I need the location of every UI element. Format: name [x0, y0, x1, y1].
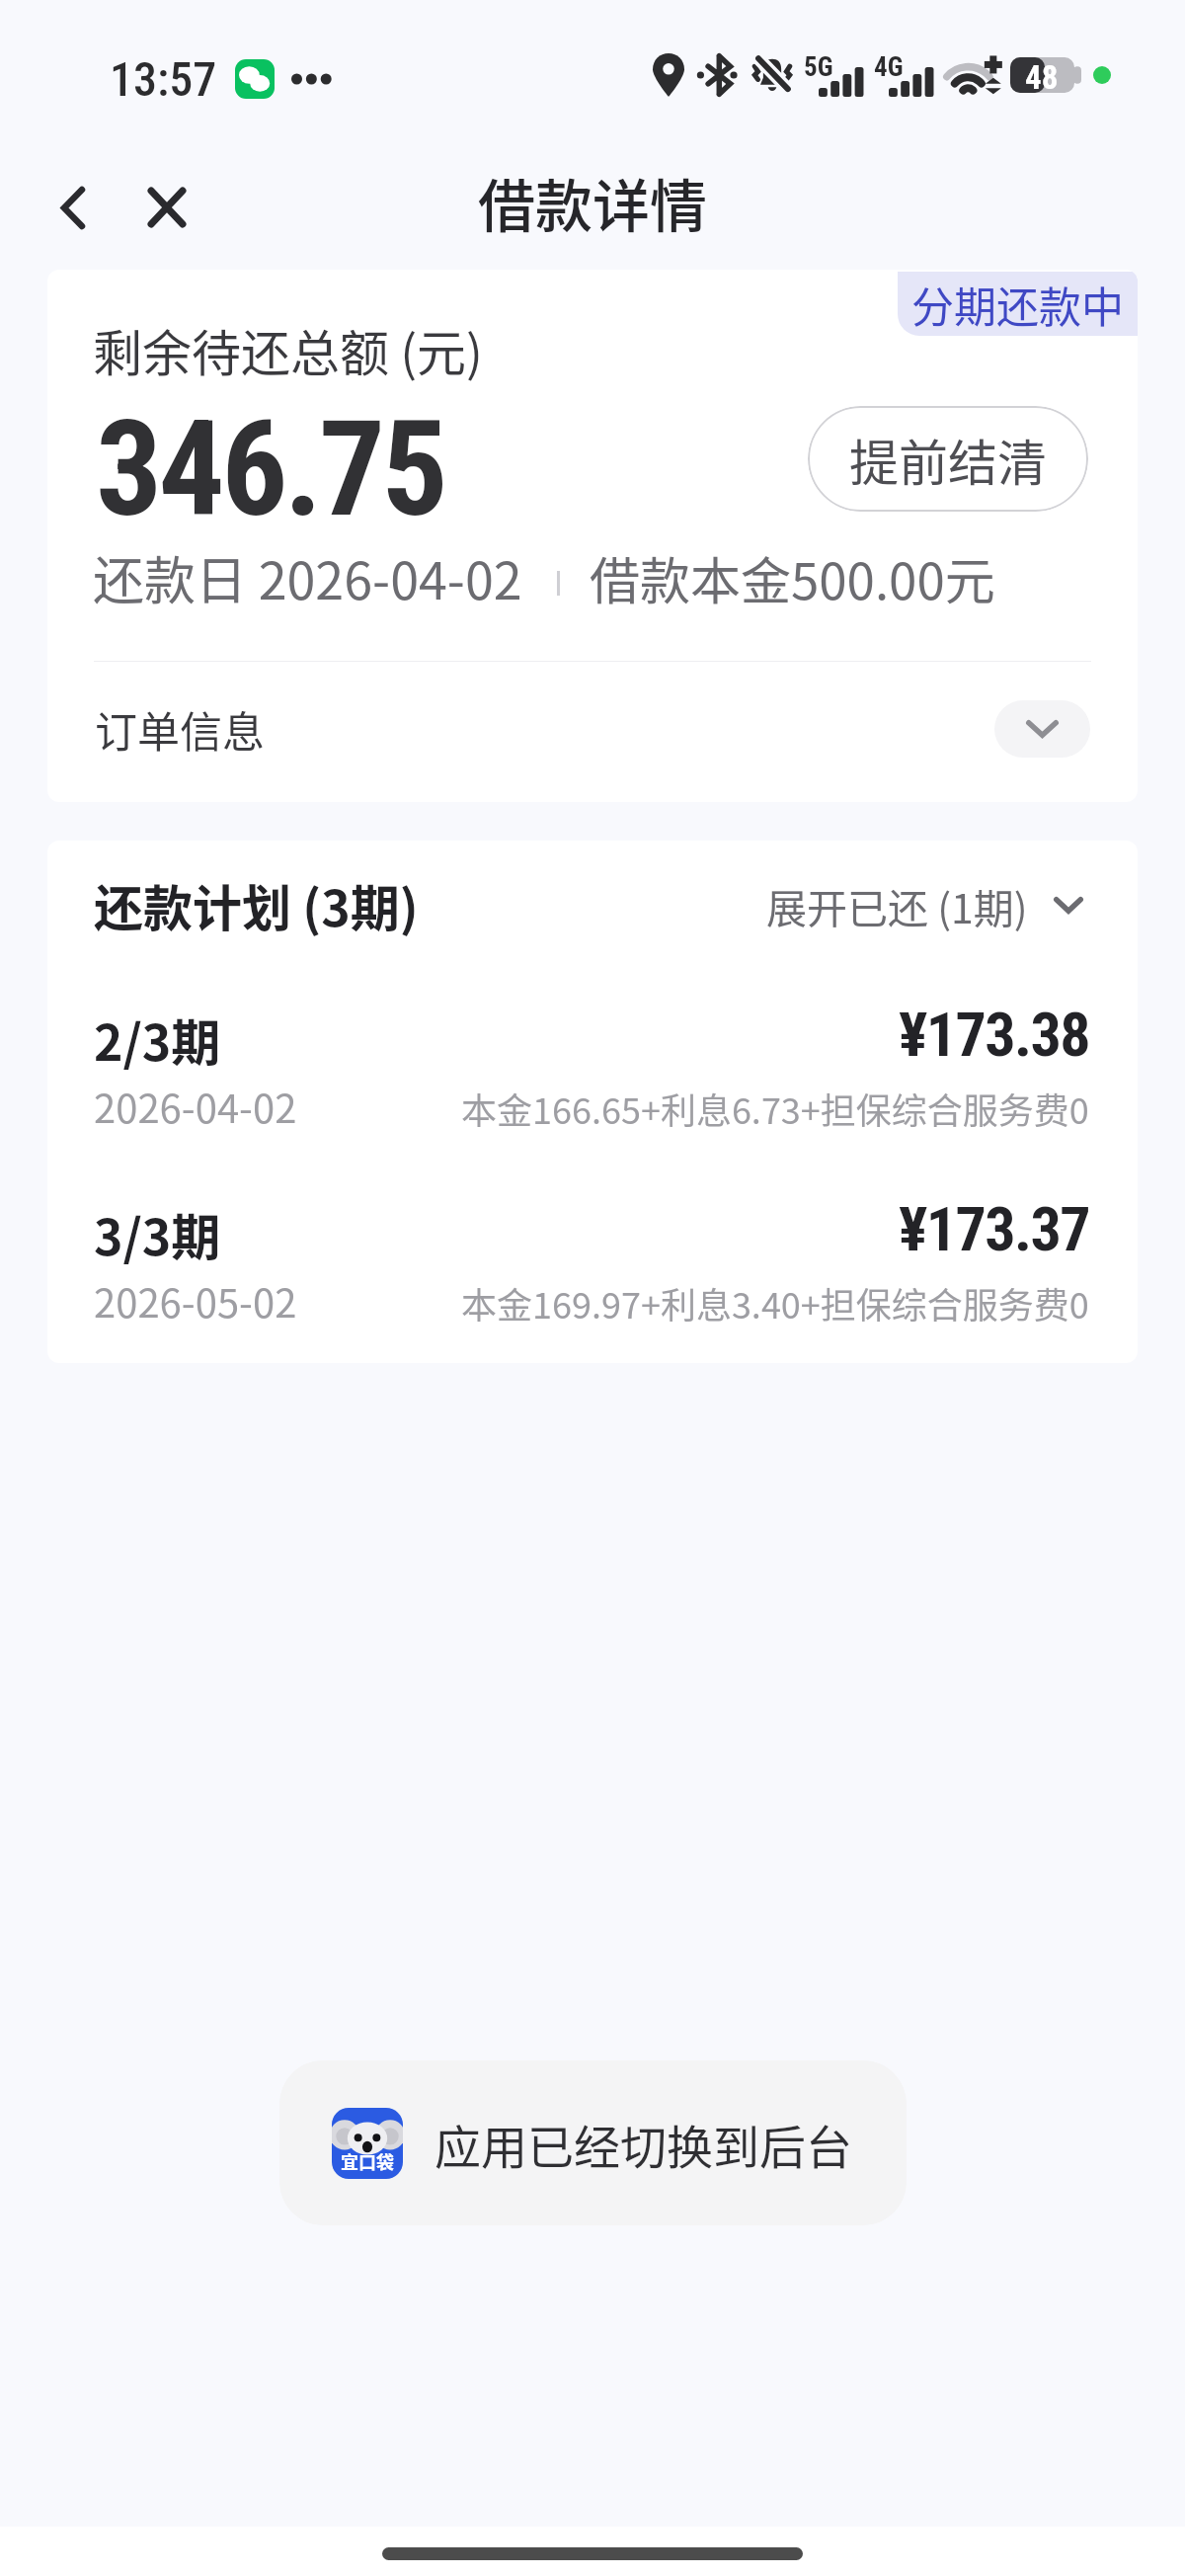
staticText: 5G — [804, 51, 833, 83]
staticText: 本金169.97+利息3.40+担保综合服务费0 — [461, 1277, 1089, 1328]
button[interactable]: 提前结清 — [808, 406, 1088, 512]
staticText: 借款本金500.00元 — [590, 541, 995, 614]
staticText: 还款日 2026-04-02 — [93, 540, 522, 614]
staticText: 订单信息 — [95, 698, 265, 760]
staticText: 4G — [874, 51, 904, 83]
button[interactable]: 2/3期 — [47, 1004, 1138, 1152]
staticText: 剩余待还总额 (元) — [93, 314, 483, 385]
staticText: 宜口袋 — [341, 2148, 394, 2174]
staticText: 2026-05-02 — [94, 1272, 297, 1329]
staticText: 13:57 — [110, 51, 217, 107]
staticText: ¥173.38 — [899, 999, 1089, 1071]
button[interactable]: 展开已还 (1期) — [760, 868, 1089, 942]
staticText: 分期还款中 — [911, 274, 1124, 335]
staticText: 本金166.65+利息6.73+担保综合服务费0 — [461, 1083, 1089, 1134]
staticText: 借款详情 — [478, 161, 708, 244]
staticText: ¥173.37 — [899, 1193, 1089, 1265]
staticText: 提前结清 — [849, 424, 1047, 495]
staticText: 3/3期 — [94, 1198, 221, 1269]
staticText: 2/3期 — [94, 1004, 221, 1075]
staticText: 48 — [1025, 58, 1059, 94]
staticText: 还款计划 (3期) — [94, 869, 419, 940]
button[interactable]: Back — [36, 170, 111, 245]
staticText: 展开已还 (1期) — [766, 876, 1028, 934]
staticText: 应用已经切换到后台 — [434, 2110, 852, 2177]
button[interactable]: 订单信息 — [47, 659, 1138, 799]
button[interactable]: 3/3期 — [47, 1198, 1138, 1346]
staticText: 346.75 — [96, 393, 445, 547]
button[interactable]: Close — [129, 170, 204, 245]
staticText: 2026-04-02 — [94, 1078, 297, 1135]
